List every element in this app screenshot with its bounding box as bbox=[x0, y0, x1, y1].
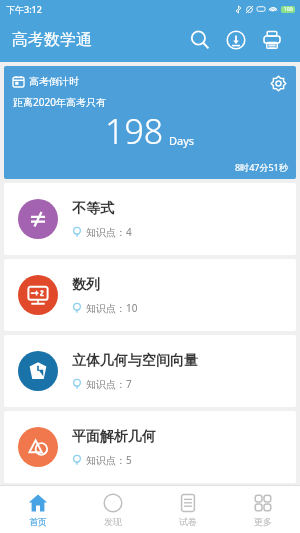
staticText: 平面解析几何 bbox=[72, 428, 156, 446]
button[interactable]: 平面解析几何 bbox=[4, 411, 296, 483]
staticText: Days bbox=[169, 133, 195, 148]
button[interactable]: 立体几何与空间向量 bbox=[4, 335, 296, 407]
staticText: 高考倒计时 bbox=[29, 75, 79, 88]
staticText: 198 bbox=[105, 108, 164, 154]
staticText: 发现 bbox=[104, 516, 122, 527]
button[interactable]: 发现 bbox=[75, 486, 150, 533]
staticText: 首页 bbox=[29, 516, 47, 527]
button[interactable]: 高考倒计时 bbox=[4, 66, 296, 179]
button[interactable]: Downloads bbox=[218, 22, 254, 58]
staticText: 知识点：7 bbox=[86, 377, 132, 391]
button[interactable]: 首页 bbox=[0, 486, 75, 533]
button[interactable]: 更多 bbox=[225, 486, 300, 533]
button[interactable]: 试卷 bbox=[150, 486, 225, 533]
button[interactable]: 不等式 bbox=[4, 183, 296, 255]
button[interactable]: Print bbox=[254, 22, 290, 58]
button[interactable]: Settings bbox=[266, 71, 290, 95]
staticText: 试卷 bbox=[179, 516, 197, 527]
staticText: 距离2020年高考只有 bbox=[13, 95, 106, 109]
staticText: 更多 bbox=[254, 516, 272, 527]
staticText: 数列 bbox=[72, 276, 100, 294]
staticText: 100 bbox=[284, 6, 293, 13]
staticText: 8时47分51秒 bbox=[235, 161, 288, 173]
button[interactable]: Search bbox=[182, 22, 218, 58]
staticText: 下午3:12 bbox=[6, 3, 42, 15]
staticText: 知识点：5 bbox=[86, 453, 132, 467]
staticText: 知识点：10 bbox=[86, 301, 138, 315]
staticText: 高考数学通 bbox=[12, 30, 92, 50]
staticText: 不等式 bbox=[72, 200, 114, 218]
staticText: 知识点：4 bbox=[86, 225, 132, 239]
staticText: 立体几何与空间向量 bbox=[72, 352, 198, 370]
button[interactable]: 数列 bbox=[4, 259, 296, 331]
